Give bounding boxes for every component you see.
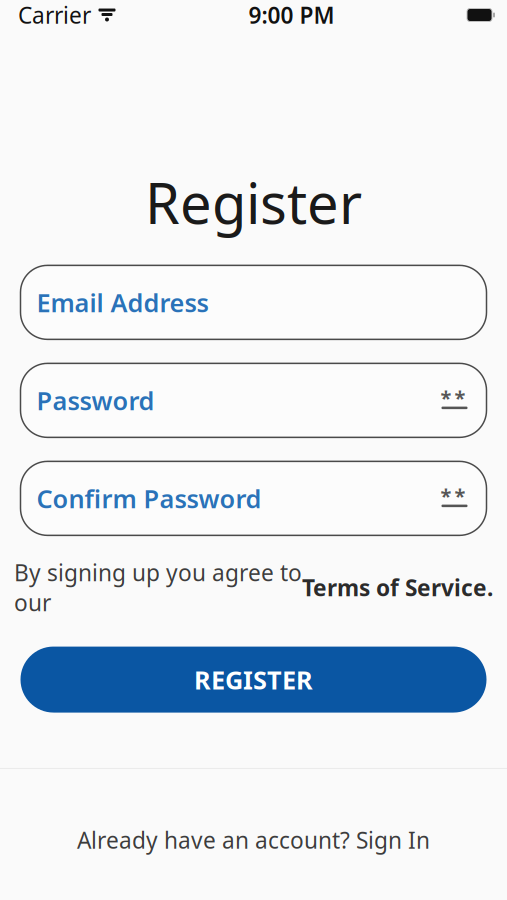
button[interactable]: Already have an account? Sign In bbox=[57, 819, 450, 861]
staticText: By signing up you agree to our bbox=[14, 557, 302, 618]
staticText: Already have an account? Sign In bbox=[77, 825, 430, 855]
button[interactable]: Terms of Service. bbox=[302, 572, 493, 602]
staticText: * bbox=[440, 384, 451, 411]
button[interactable]: Password bbox=[20, 363, 486, 437]
button[interactable]: REGISTER bbox=[20, 647, 486, 713]
staticText: * bbox=[454, 482, 465, 509]
staticText: * bbox=[454, 384, 465, 411]
staticText: REGISTER bbox=[194, 663, 313, 696]
staticText: Email Address bbox=[36, 285, 208, 319]
button[interactable]: Email Address bbox=[20, 265, 486, 339]
staticText: Carrier bbox=[18, 0, 91, 30]
staticText: Terms of Service. bbox=[302, 572, 493, 602]
staticText: * bbox=[440, 482, 451, 509]
staticText: Password bbox=[36, 383, 154, 417]
staticText: 9:00 PM bbox=[248, 0, 334, 30]
button[interactable]: Confirm Password bbox=[20, 461, 486, 535]
staticText: Confirm Password bbox=[36, 481, 261, 515]
staticText: Register bbox=[145, 165, 362, 239]
